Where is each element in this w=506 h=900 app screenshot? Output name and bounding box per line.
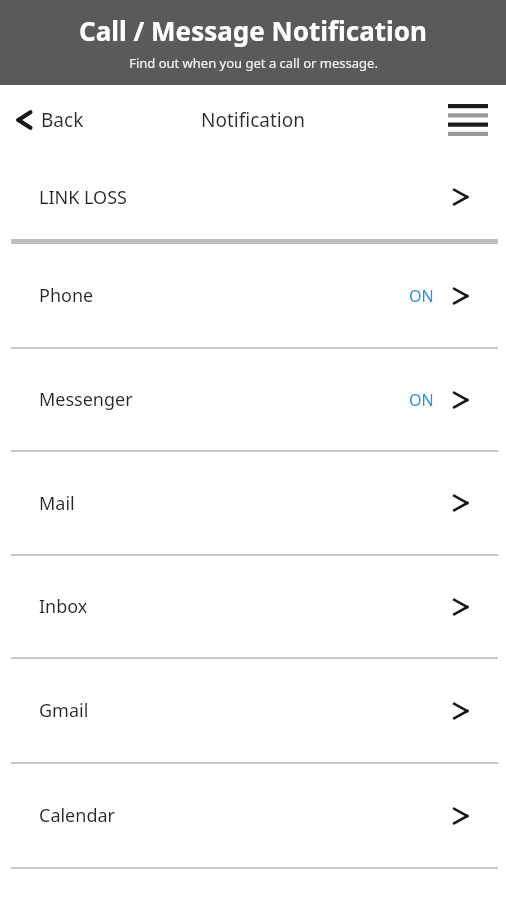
staticText: Notification [201, 107, 305, 133]
staticText: Back [41, 107, 84, 133]
staticText: Calendar [39, 803, 115, 828]
button[interactable]: Calendar [0, 764, 506, 867]
button[interactable]: Inbox [0, 556, 506, 657]
button[interactable]: Menu [440, 96, 496, 144]
staticText: Find out when you get a call or message. [129, 54, 378, 72]
staticText: Phone [39, 283, 94, 308]
staticText: LINK LOSS [39, 185, 127, 210]
button[interactable]: Phone [0, 244, 506, 347]
staticText: Call / Message Notification [79, 13, 427, 48]
button[interactable]: Back [8, 99, 90, 141]
staticText: Gmail [39, 698, 89, 723]
staticText: ON [409, 389, 434, 411]
button[interactable]: LINK LOSS [0, 155, 506, 239]
button[interactable]: Messenger [0, 349, 506, 450]
staticText: Mail [39, 491, 75, 516]
staticText: Messenger [39, 387, 133, 412]
button[interactable]: Gmail [0, 659, 506, 762]
staticText: ON [409, 285, 434, 307]
staticText: Inbox [39, 594, 88, 619]
button[interactable]: Mail [0, 452, 506, 554]
